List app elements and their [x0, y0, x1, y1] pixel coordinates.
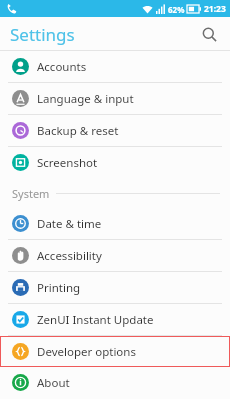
staticText: About — [37, 375, 70, 391]
staticText: ZenUI Instant Update — [37, 312, 154, 328]
staticText: Backup & reset — [37, 123, 119, 139]
staticText: System — [12, 186, 50, 201]
staticText: 62% — [168, 4, 185, 15]
staticText: Accessibility — [37, 248, 102, 264]
staticText: 21:23 — [204, 3, 226, 15]
staticText: Screenshot — [37, 155, 98, 171]
button[interactable]: Printing — [0, 272, 230, 303]
staticText: Printing — [37, 280, 81, 296]
staticText: Language & input — [37, 91, 134, 107]
button[interactable]: About — [0, 367, 230, 398]
button[interactable]: Screenshot — [0, 147, 230, 178]
button[interactable]: Backup & reset — [0, 115, 230, 146]
button[interactable]: ZenUI Instant Update — [0, 304, 230, 335]
button[interactable]: Date & time — [0, 208, 230, 239]
button[interactable]: Accessibility — [0, 240, 230, 271]
staticText: Settings — [10, 23, 75, 46]
staticText: Date & time — [37, 216, 102, 232]
button[interactable]: Developer options — [0, 336, 230, 367]
button[interactable]: Search — [196, 21, 222, 47]
button[interactable]: Accounts — [0, 51, 230, 82]
button[interactable]: Language & input — [0, 83, 230, 114]
staticText: Developer options — [37, 344, 136, 360]
staticText: Accounts — [37, 59, 87, 75]
